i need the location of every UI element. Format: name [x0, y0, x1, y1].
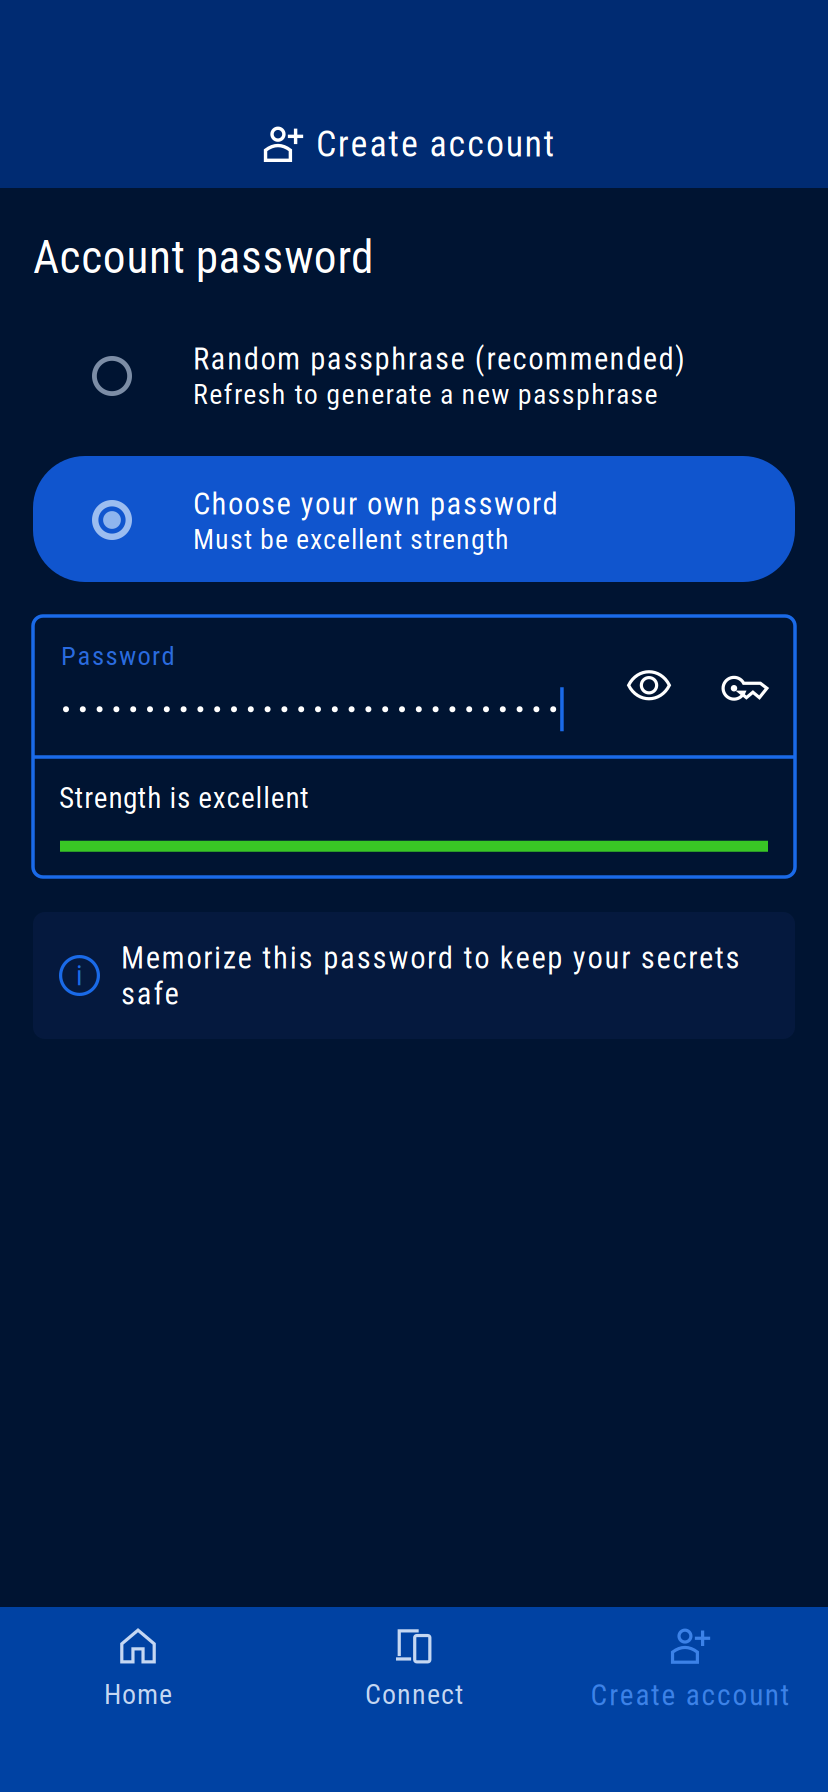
staticText: Connect [365, 1678, 463, 1711]
button[interactable]: Home [0, 1607, 276, 1792]
button[interactable]: Generate password [709, 652, 781, 724]
staticText: Must be excellent strength [193, 523, 509, 556]
staticText: Choose your own password [193, 486, 557, 522]
staticText: Create account [591, 1678, 789, 1712]
button[interactable]: Show password [613, 649, 685, 721]
staticText: Memorize this password to keep your secr… [121, 940, 740, 1012]
staticText: Random passphrase (recommended) [193, 341, 685, 377]
staticText: Refresh to generate a new passphrase [193, 378, 657, 411]
staticText: Strength is excellent [59, 781, 309, 815]
button[interactable]: Random passphrase (recommended) [92, 341, 828, 437]
button[interactable]: Connect [276, 1607, 552, 1792]
staticText: Account password [33, 231, 373, 284]
button[interactable]: Create account [552, 1607, 828, 1792]
button[interactable]: Choose your own password [33, 456, 795, 582]
staticText: i [76, 959, 83, 992]
staticText: Home [104, 1678, 172, 1711]
staticText: Create account [316, 123, 554, 165]
staticText: Password [61, 640, 174, 671]
